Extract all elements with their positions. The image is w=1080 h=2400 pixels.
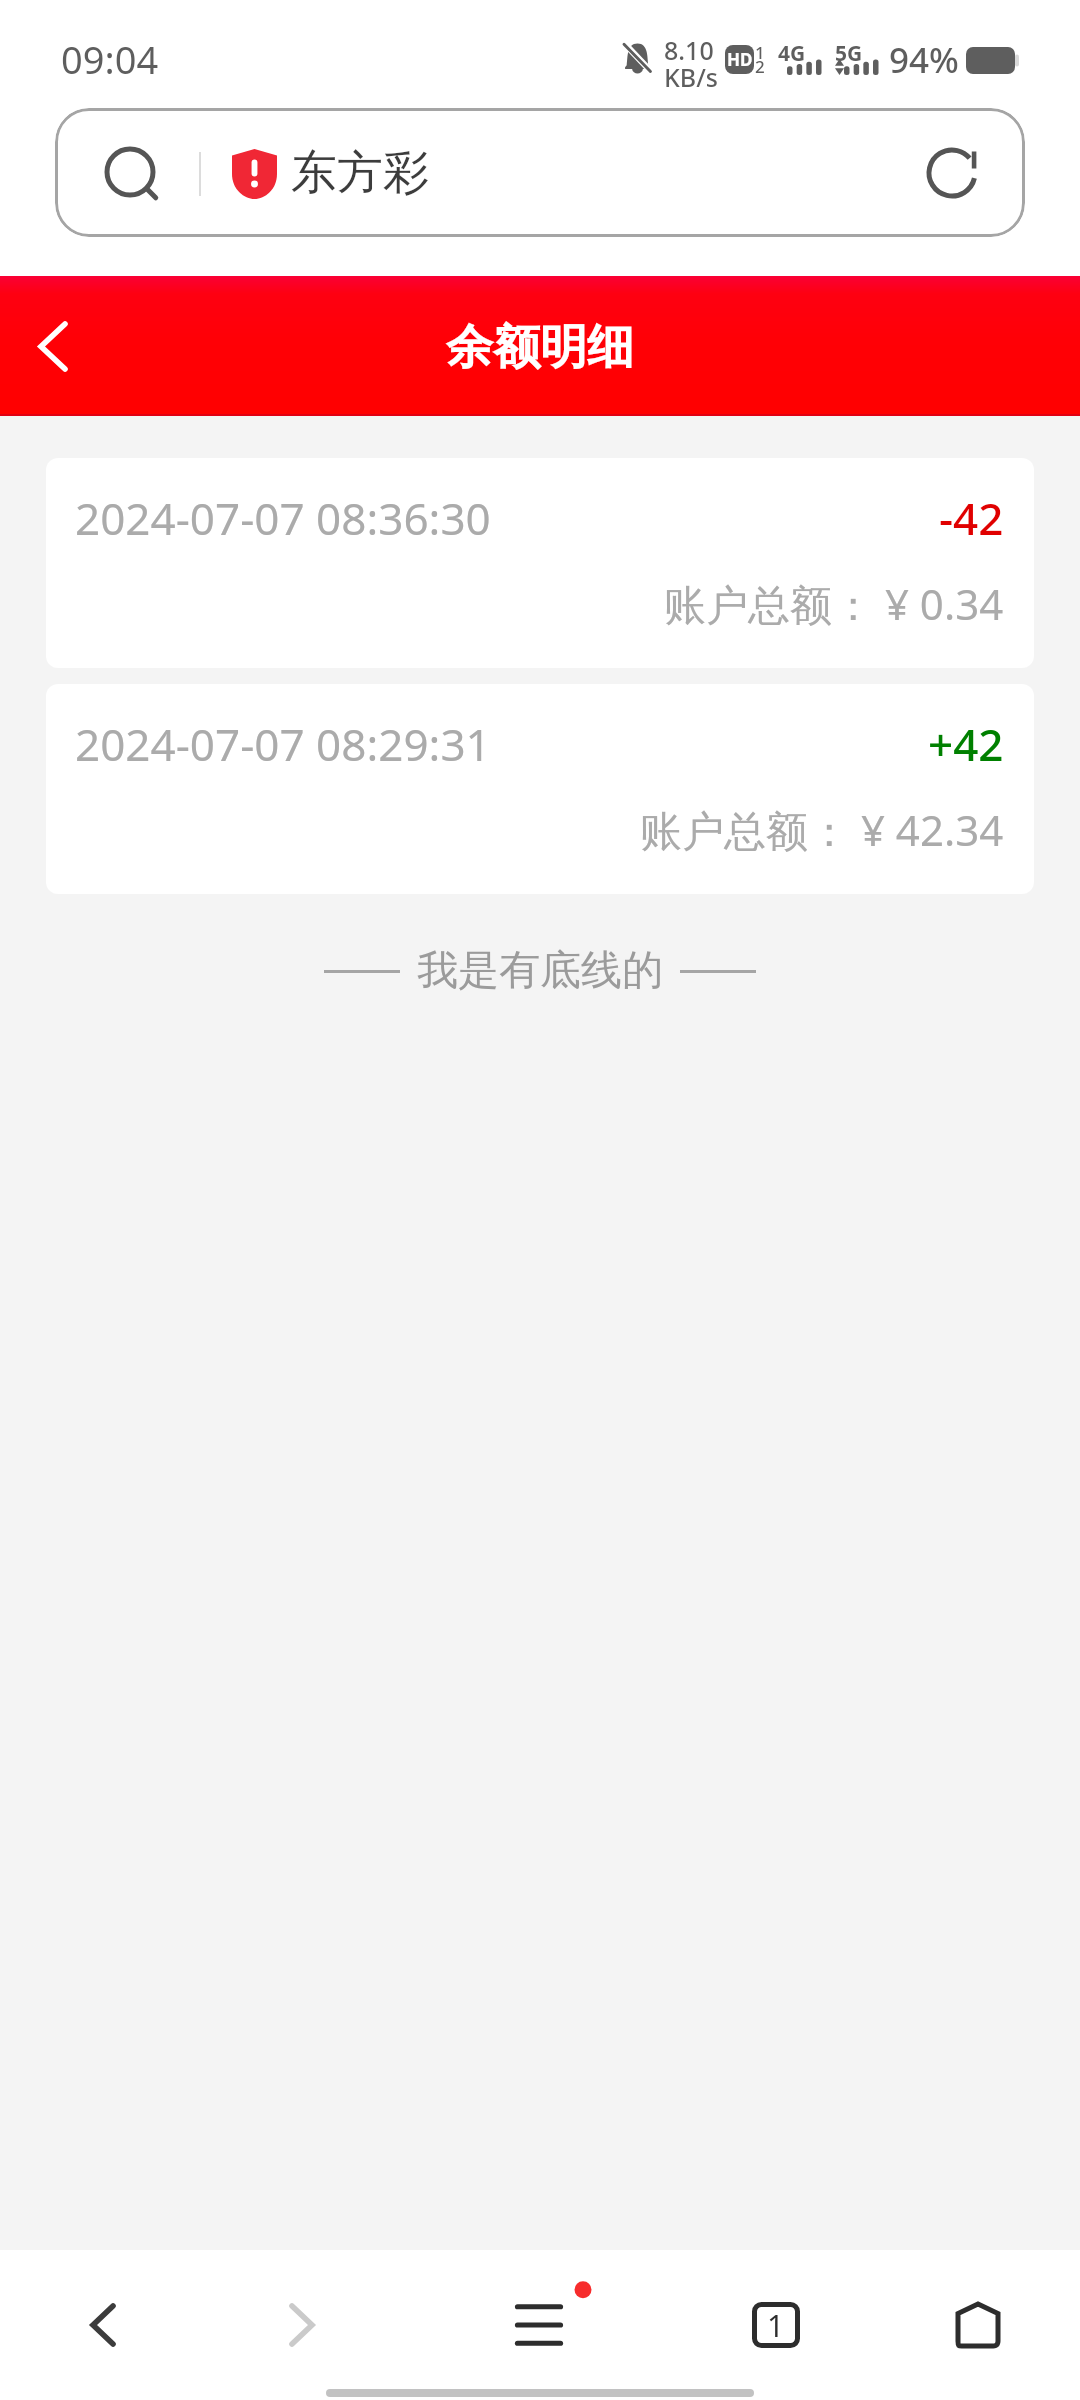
staticText: 09:04 bbox=[61, 33, 159, 85]
button[interactable]: Menu bbox=[485, 2270, 593, 2380]
staticText: +42 bbox=[928, 714, 1004, 774]
staticText: 余额明细 bbox=[446, 318, 634, 377]
staticText: 94% bbox=[889, 36, 959, 84]
button[interactable]: Back bbox=[5, 298, 101, 394]
staticText: 账户总额： ¥ 0.34 bbox=[664, 575, 1004, 632]
staticText: 1 bbox=[767, 2305, 785, 2346]
staticText: 4G bbox=[778, 39, 806, 68]
button[interactable]: Forward bbox=[248, 2270, 356, 2380]
staticText: HD bbox=[727, 48, 753, 71]
staticText: -42 bbox=[939, 488, 1004, 548]
staticText: 账户总额： ¥ 42.34 bbox=[640, 801, 1004, 858]
staticText: 东方彩 bbox=[291, 144, 429, 202]
staticText: 5G bbox=[835, 39, 863, 68]
staticText: 2024-07-07 08:29:31 bbox=[75, 714, 491, 774]
button[interactable]: Tabs bbox=[722, 2270, 830, 2380]
staticText: 2 bbox=[755, 55, 765, 78]
button[interactable]: Back bbox=[49, 2270, 157, 2380]
staticText: KB/s bbox=[664, 60, 718, 94]
button[interactable]: Search bbox=[55, 108, 1025, 237]
staticText: 2024-07-07 08:36:30 bbox=[75, 488, 491, 548]
staticText: 1 bbox=[755, 41, 765, 64]
staticText: 8.10 bbox=[664, 33, 714, 67]
button[interactable]: 2024-07-07 08:29:31 bbox=[46, 684, 1034, 894]
button[interactable]: Refresh bbox=[917, 138, 987, 208]
staticText: 我是有底线的 bbox=[417, 945, 663, 997]
button[interactable]: 2024-07-07 08:36:30 bbox=[46, 458, 1034, 668]
button[interactable]: Home bbox=[924, 2270, 1032, 2380]
